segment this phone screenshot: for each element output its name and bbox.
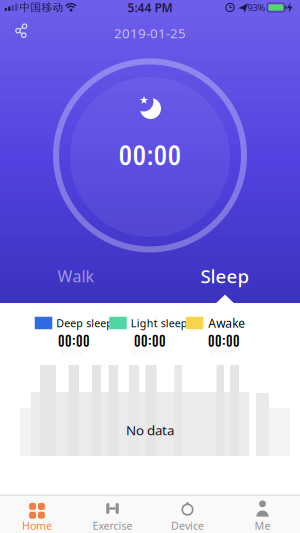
staticText: Me (254, 518, 270, 533)
staticText: Awake (208, 315, 245, 331)
button[interactable]: Exercise (75, 495, 150, 533)
button[interactable]: Me (225, 495, 300, 533)
staticText: 00:00 (118, 140, 181, 172)
staticText: Device (171, 518, 204, 533)
staticText: Home (22, 518, 52, 533)
staticText: Deep sleep (56, 316, 113, 330)
staticText: No data (126, 421, 174, 439)
staticText: 中国移动 (19, 1, 63, 14)
staticText: 2019-01-25 (114, 24, 186, 42)
staticText: 5:44 PM (127, 0, 172, 15)
staticText: Exercise (92, 518, 132, 533)
button[interactable]: Sleep (180, 261, 270, 291)
staticText: Walk (57, 265, 94, 287)
staticText: Light sleep (131, 316, 188, 330)
button[interactable]: Device (150, 495, 225, 533)
staticText: Sleep (200, 264, 249, 288)
staticText: 00:00 (61, 345, 83, 357)
staticText: 00:00 (58, 331, 90, 349)
button[interactable] (9, 19, 33, 43)
staticText: 93% (247, 1, 265, 14)
button[interactable]: Home (0, 495, 75, 533)
staticText: 00:00 (134, 331, 166, 349)
button[interactable]: Walk (31, 261, 121, 291)
staticText: 00:00 (210, 345, 232, 357)
staticText: 00:00 (208, 331, 240, 349)
staticText: 00:00 (131, 345, 153, 357)
